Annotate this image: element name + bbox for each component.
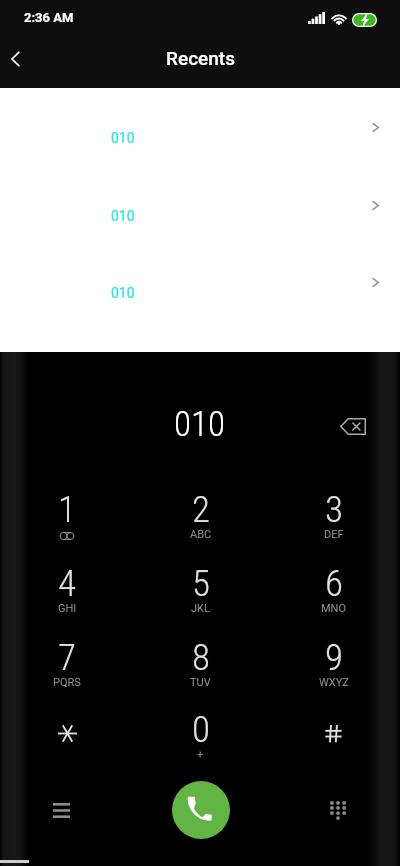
staticText: 1 [58,488,76,531]
button[interactable]: Back [0,39,36,79]
button[interactable]: 2 [134,488,267,562]
staticText: 8 [192,636,210,679]
button[interactable]: 010 [0,166,400,244]
staticText: GHI [58,602,77,615]
button[interactable]: Call [172,781,230,839]
staticText: WXYZ [319,676,349,689]
button[interactable]: 0 [134,708,267,782]
staticText: DEF [324,528,344,541]
button[interactable]: 010 [0,88,400,166]
staticText: Recents [166,47,235,69]
staticText: 010 [111,285,135,301]
staticText: 6 [325,562,343,605]
button[interactable]: Keypad [318,790,358,830]
staticText: 7 [58,636,76,679]
staticText: 010 [174,404,226,445]
button[interactable]: 5 [134,562,267,636]
staticText: 5 [192,562,210,605]
button[interactable]: 9 [267,636,400,710]
staticText: + [197,748,204,761]
button[interactable]: Call log [41,790,81,830]
button[interactable]: 1 [0,488,134,562]
staticText: 4 [58,562,76,605]
staticText: PQRS [53,676,81,689]
staticText: MNO [321,602,347,615]
staticText: 2 [192,488,210,531]
staticText: ABC [190,528,212,541]
button[interactable]: 8 [134,636,267,710]
staticText: 3 [325,488,343,531]
button[interactable]: 3 [267,488,400,562]
staticText: 010 [111,130,135,146]
button[interactable]: Backspace [332,405,374,447]
button[interactable]: 7 [0,636,134,710]
button[interactable] [0,708,134,782]
staticText: 2:36 AM [24,10,74,25]
staticText: TUV [190,676,211,689]
button[interactable]: 4 [0,562,134,636]
button[interactable]: 010 [0,243,400,321]
button[interactable] [267,708,400,782]
button[interactable]: 6 [267,562,400,636]
staticText: 9 [325,636,343,679]
staticText: 0 [192,708,210,751]
staticText: JKL [191,602,210,615]
staticText: 010 [111,208,135,224]
